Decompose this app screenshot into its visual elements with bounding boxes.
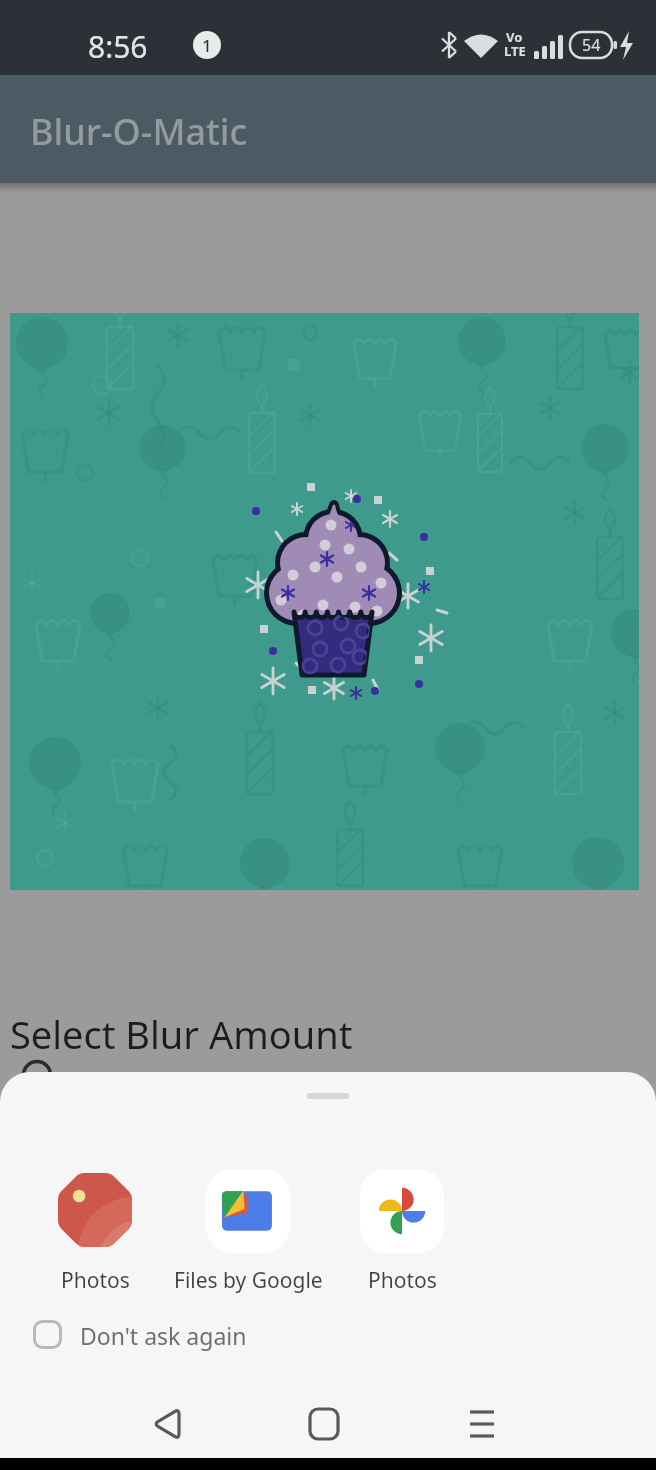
button[interactable] xyxy=(120,1390,220,1458)
staticText: Select Blur Amount xyxy=(10,1008,353,1060)
staticText: 54 xyxy=(582,34,601,56)
button[interactable] xyxy=(432,1390,532,1458)
staticText: Blur-O-Matic xyxy=(30,107,248,156)
button[interactable]: Don't ask again xyxy=(33,1312,293,1360)
staticText: Files by Google xyxy=(174,1266,323,1295)
staticText: LTE xyxy=(504,42,526,60)
staticText: 8:56 xyxy=(88,26,148,67)
staticText: 1 xyxy=(202,34,212,57)
button[interactable]: Photos xyxy=(332,1168,472,1303)
button[interactable] xyxy=(274,1390,374,1458)
staticText: Vo xyxy=(506,28,523,46)
staticText: Photos xyxy=(368,1266,437,1295)
staticText: Don't ask again xyxy=(80,1320,247,1351)
button[interactable]: Files by Google xyxy=(168,1168,328,1303)
button[interactable]: Photos xyxy=(25,1168,165,1303)
staticText: Photos xyxy=(61,1266,130,1295)
